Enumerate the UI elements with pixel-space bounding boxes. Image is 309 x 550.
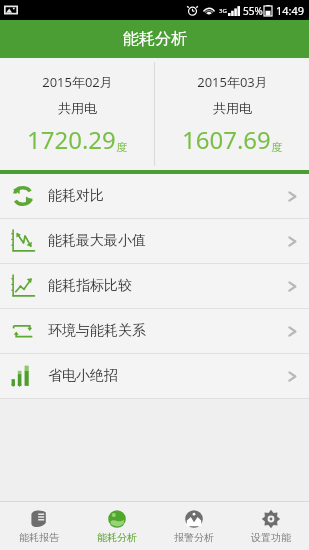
staticText: 能耗分析	[97, 531, 137, 544]
button[interactable]: 能耗对比	[0, 174, 309, 218]
staticText: 1607.69	[182, 123, 271, 156]
staticText: 报警分析	[174, 531, 214, 544]
staticText: 2015年02月	[42, 73, 113, 91]
button[interactable]: 能耗指标比较	[0, 264, 309, 308]
staticText: 度	[116, 140, 127, 154]
staticText: 能耗指标比较	[48, 277, 132, 295]
staticText: 能耗报告	[19, 531, 59, 544]
staticText: 能耗最大最小值	[48, 232, 146, 250]
staticText: 度	[271, 140, 282, 154]
staticText: 能耗分析	[123, 29, 187, 49]
button[interactable]: 能耗分析	[78, 502, 155, 550]
button[interactable]: 2015年02月	[0, 58, 154, 170]
staticText: 共用电	[58, 100, 97, 116]
staticText: 设置功能	[251, 531, 291, 544]
staticText: 省电小绝招	[48, 367, 118, 385]
staticText: 14:49	[276, 3, 305, 18]
staticText: 55%	[243, 4, 263, 18]
staticText: 2015年03月	[197, 73, 268, 91]
button[interactable]: 报警分析	[155, 502, 232, 550]
staticText: 环境与能耗关系	[48, 322, 146, 340]
button[interactable]: 设置功能	[232, 502, 309, 550]
staticText: 1720.29	[27, 123, 116, 156]
button[interactable]: 2015年03月	[155, 58, 309, 170]
button[interactable]: 能耗最大最小值	[0, 219, 309, 263]
staticText: 3G	[219, 7, 227, 15]
button[interactable]: 环境与能耗关系	[0, 309, 309, 353]
staticText: 能耗对比	[48, 187, 104, 205]
staticText: 共用电	[213, 100, 252, 116]
button[interactable]: 能耗报告	[0, 502, 78, 550]
button[interactable]: 省电小绝招	[0, 354, 309, 398]
